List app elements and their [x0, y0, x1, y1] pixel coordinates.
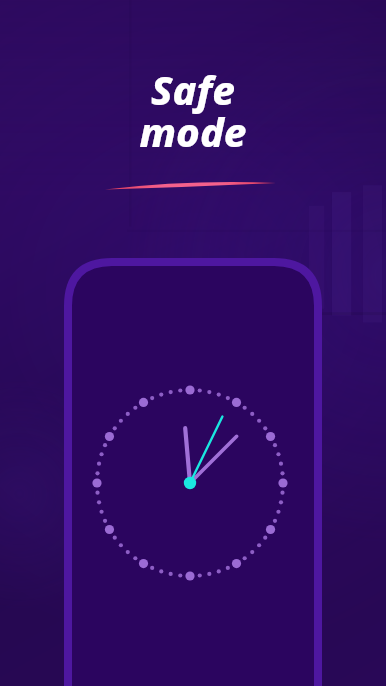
- button[interactable]: Safe mode screen: [0, 0, 386, 686]
